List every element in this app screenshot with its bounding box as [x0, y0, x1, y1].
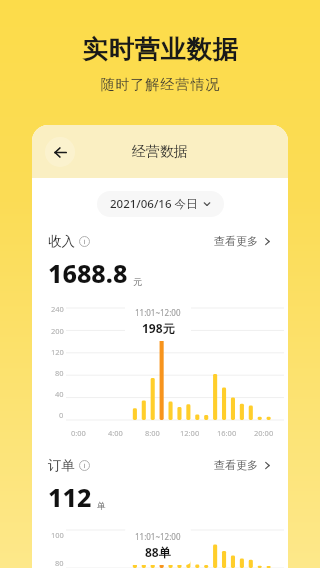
- staticText: 100: [51, 530, 64, 540]
- staticText: 40: [55, 389, 64, 399]
- staticText: 16:00: [217, 428, 237, 438]
- staticText: 1688.8: [48, 256, 128, 290]
- staticText: 元: [133, 276, 142, 287]
- staticText: 4:00: [108, 428, 123, 438]
- staticText: 0: [59, 410, 64, 420]
- staticText: 80: [55, 558, 64, 568]
- staticText: 查看更多: [214, 234, 258, 248]
- staticText: 实时营业数据: [82, 34, 238, 65]
- button[interactable]: 查看更多: [214, 458, 272, 472]
- staticText: 收入: [48, 233, 75, 250]
- staticText: 80: [55, 368, 64, 378]
- staticText: 120: [51, 347, 64, 357]
- staticText: 20:00: [254, 428, 274, 438]
- staticText: 0:00: [71, 428, 86, 438]
- staticText: 单: [97, 500, 106, 511]
- staticText: 查看更多: [214, 458, 258, 472]
- staticText: 随时了解经营情况: [100, 76, 220, 94]
- staticText: 240: [51, 304, 64, 314]
- staticText: 12:00: [180, 428, 200, 438]
- staticText: 2021/06/16 今日: [110, 196, 198, 212]
- staticText: 11:01~12:00: [135, 307, 181, 318]
- staticText: 200: [51, 326, 64, 336]
- button[interactable]: Back: [45, 137, 75, 167]
- staticText: 订单: [48, 457, 75, 474]
- staticText: 8:00: [145, 428, 160, 438]
- button[interactable]: 2021/06/16 今日: [97, 191, 224, 217]
- staticText: 经营数据: [132, 143, 188, 161]
- staticText: 11:01~12:00: [135, 531, 181, 542]
- button[interactable]: 查看更多: [214, 234, 272, 248]
- staticText: 198元: [142, 320, 175, 336]
- button[interactable]: Info: [79, 236, 90, 247]
- staticText: 88单: [145, 544, 171, 560]
- staticText: 112: [48, 480, 92, 514]
- button[interactable]: Info: [79, 460, 90, 471]
